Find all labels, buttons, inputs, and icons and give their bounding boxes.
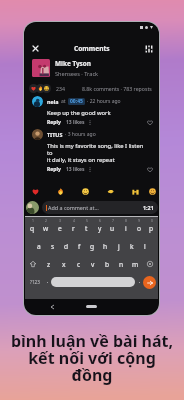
button[interactable]: Send	[143, 276, 156, 289]
staticText: b	[105, 260, 110, 269]
staticText: r	[72, 224, 75, 233]
button[interactable]: a	[32, 237, 46, 255]
staticText: Add a comment at…	[48, 204, 99, 211]
button[interactable]: Add a comment at…	[42, 201, 158, 214]
staticText: 7	[112, 218, 114, 223]
button[interactable]: g	[86, 237, 99, 255]
staticText: at	[61, 98, 66, 105]
staticText: m	[132, 260, 139, 269]
button[interactable]: c	[71, 255, 86, 273]
button[interactable]: Reaction	[25, 185, 48, 198]
staticText: f	[78, 242, 81, 251]
staticText: TITUS	[47, 131, 63, 138]
button[interactable]: l	[138, 237, 151, 255]
staticText: 234	[56, 85, 65, 92]
button[interactable]: Mixer settings	[142, 42, 155, 55]
staticText: d	[64, 242, 69, 251]
staticText: bình luận về bài hát, kết nối với cộng đ…	[0, 330, 184, 386]
staticText: 13 likes	[66, 166, 85, 173]
staticText: w	[43, 224, 49, 233]
button[interactable]: x	[56, 255, 71, 273]
button[interactable]: d	[60, 237, 73, 255]
button[interactable]: Back	[51, 305, 54, 309]
button[interactable]: b	[100, 255, 114, 273]
staticText: h	[103, 242, 108, 251]
button[interactable]: Like	[147, 167, 153, 172]
button[interactable]: 6	[93, 218, 106, 237]
button[interactable]: Reply	[47, 119, 61, 126]
button[interactable]: Reply	[47, 166, 61, 173]
staticText: 4	[73, 218, 75, 223]
staticText: 1	[32, 218, 34, 223]
button[interactable]: Reaction	[48, 185, 73, 198]
staticText: 0	[151, 218, 153, 223]
staticText: y	[98, 224, 102, 233]
staticText: ?123	[30, 279, 40, 285]
button[interactable]: ?123	[26, 273, 43, 291]
button[interactable]: v	[86, 255, 100, 273]
staticText: q	[30, 224, 35, 233]
staticText: v	[91, 260, 95, 269]
button[interactable]: 2	[39, 218, 53, 237]
staticText: j	[118, 242, 120, 251]
button[interactable]: m	[128, 255, 142, 273]
button[interactable]: Reaction	[98, 185, 123, 198]
staticText: Mike Tyson	[55, 59, 91, 68]
staticText: Comments	[74, 44, 110, 53]
button[interactable]: k	[125, 237, 138, 255]
staticText: k	[130, 242, 134, 251]
staticText: 6	[99, 218, 101, 223]
button[interactable]: n	[114, 255, 128, 273]
button[interactable]: Like	[147, 120, 153, 125]
staticText: 00:45	[70, 98, 83, 105]
button[interactable]: f	[73, 237, 86, 255]
staticText: x	[62, 260, 66, 269]
staticText: o	[137, 224, 141, 233]
button[interactable]: 9	[132, 218, 145, 237]
button[interactable]: More	[89, 120, 91, 125]
button[interactable]: 7	[106, 218, 119, 237]
staticText: Keep up the good work	[47, 109, 111, 117]
button[interactable]: 1	[25, 218, 39, 237]
staticText: 3	[59, 218, 61, 223]
staticText: e	[58, 224, 62, 233]
button[interactable]: Reaction	[148, 185, 156, 198]
button[interactable]: 0	[145, 218, 158, 237]
staticText: · 22 hours ago	[87, 98, 121, 105]
button[interactable]: Space	[51, 277, 135, 287]
staticText: l	[144, 242, 146, 251]
staticText: u	[110, 224, 115, 233]
staticText: t	[85, 224, 88, 233]
button[interactable]: Reaction	[123, 185, 148, 198]
staticText: 8	[125, 218, 127, 223]
staticText: 13 likes	[66, 119, 85, 126]
button[interactable]: 5	[80, 218, 93, 237]
button[interactable]: Close	[29, 42, 42, 55]
staticText: Shensees · Track	[55, 70, 99, 78]
staticText: a	[37, 242, 41, 251]
staticText: · 3 hours ago	[65, 131, 96, 138]
button[interactable]: s	[46, 237, 60, 255]
button[interactable]: z	[41, 255, 56, 273]
button[interactable]: More	[89, 167, 91, 172]
button[interactable]: h	[99, 237, 112, 255]
staticText: 8.8k comments · 783 reposts	[82, 85, 152, 92]
staticText: i	[125, 224, 127, 233]
staticText: This is my favorite song, like I listen …	[47, 142, 144, 164]
button[interactable]: Mike Tyson	[32, 56, 153, 80]
button[interactable]: j	[112, 237, 125, 255]
button[interactable]	[135, 273, 143, 291]
button[interactable]: 4	[67, 218, 80, 237]
button[interactable]	[43, 273, 51, 291]
staticText: p	[149, 224, 154, 233]
staticText: 9	[138, 218, 140, 223]
button[interactable]: 3	[53, 218, 67, 237]
staticText: 5	[86, 218, 88, 223]
button[interactable]: Shift	[25, 255, 41, 273]
staticText: 1:21	[143, 204, 154, 211]
staticText: nela	[47, 98, 59, 105]
staticText: s	[51, 242, 55, 251]
button[interactable]: Backspace	[142, 255, 158, 273]
button[interactable]: Reaction	[73, 185, 98, 198]
button[interactable]: 8	[119, 218, 132, 237]
